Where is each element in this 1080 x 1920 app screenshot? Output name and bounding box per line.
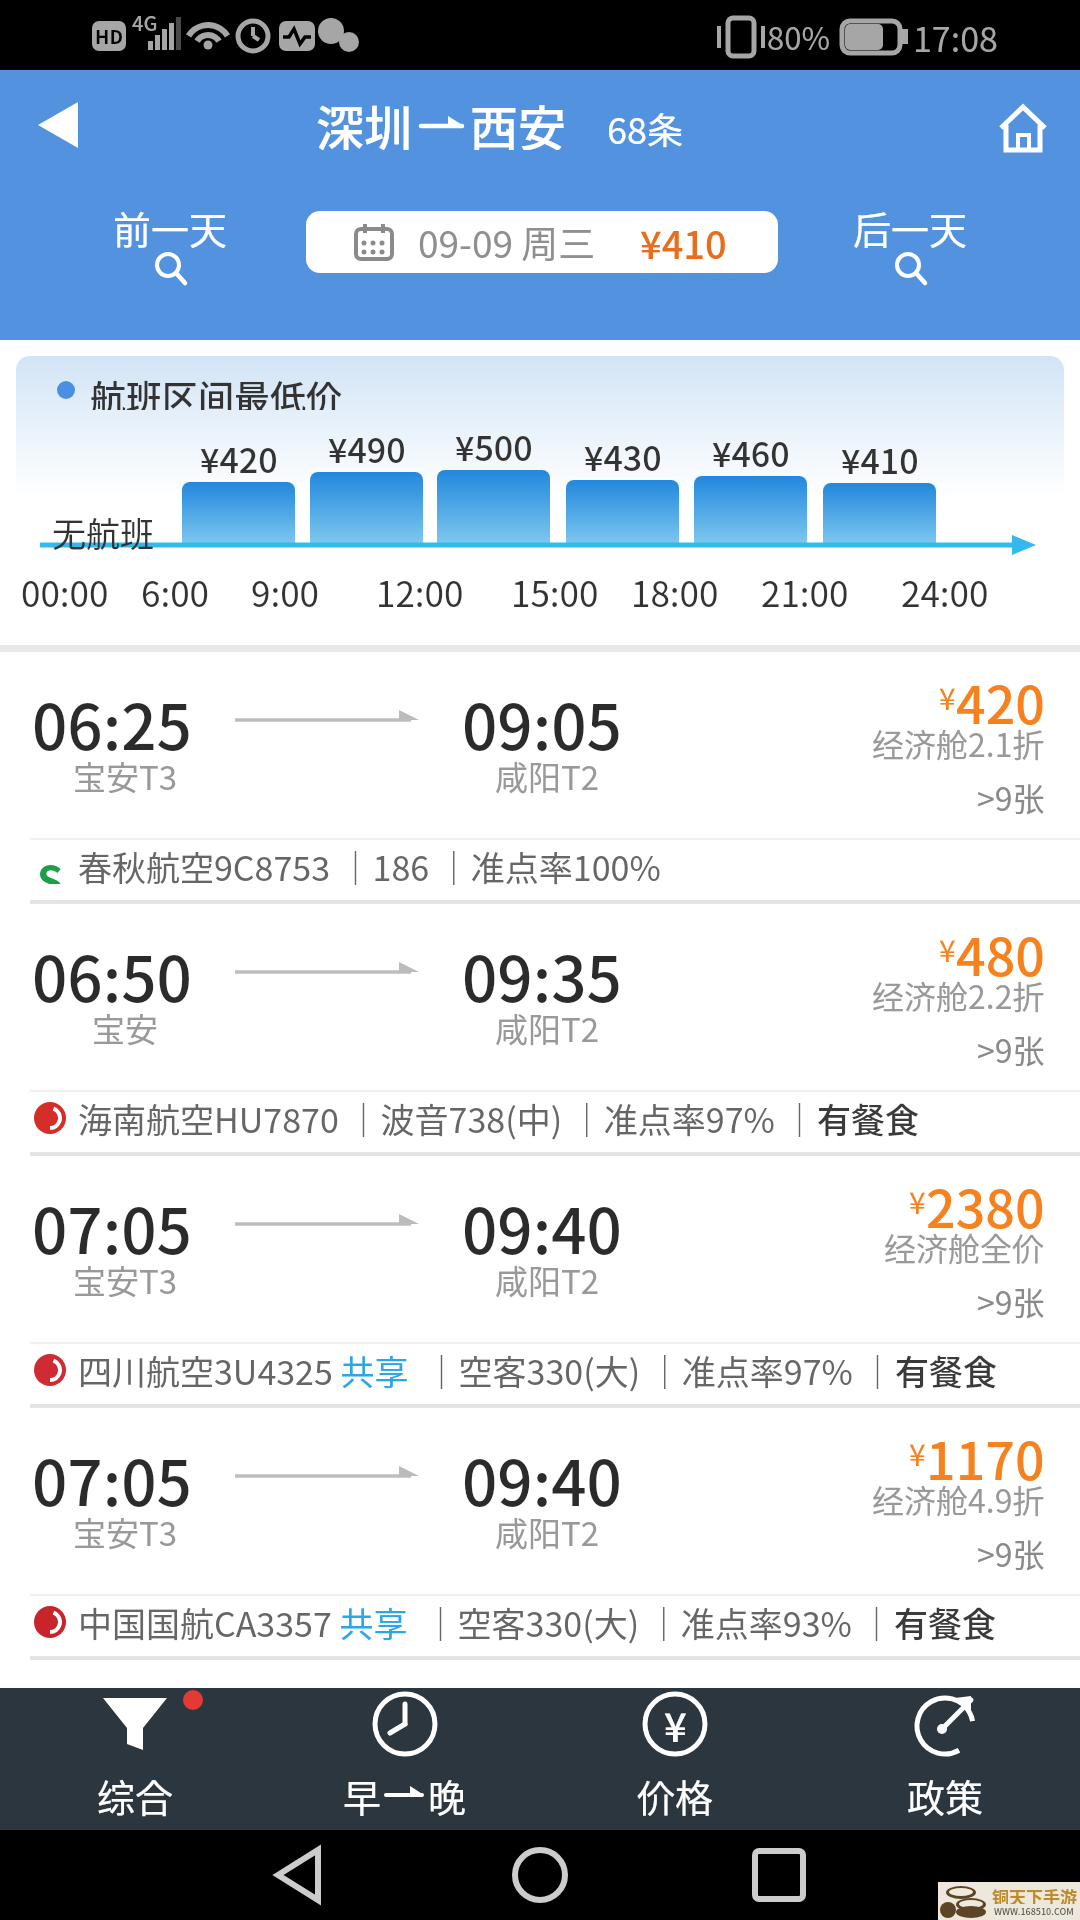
staticText: ¥ bbox=[909, 1179, 926, 1222]
staticText: 晚 bbox=[428, 1768, 467, 1818]
button[interactable]: 06:25 bbox=[0, 652, 1080, 904]
staticText: 有餐食 bbox=[895, 1346, 997, 1395]
staticText: 西安 bbox=[470, 90, 567, 150]
button[interactable]: 07:05 bbox=[0, 1408, 1080, 1660]
staticText: ｜空客330(大) ｜准点率93% ｜ bbox=[416, 1598, 894, 1647]
staticText: 中国国航CA3357 bbox=[78, 1598, 332, 1647]
staticText: 06:25 bbox=[32, 678, 192, 762]
staticText: >9张 bbox=[977, 1530, 1045, 1572]
staticText: 咸阳T2 bbox=[495, 1256, 600, 1300]
staticText: ¥ bbox=[664, 1696, 687, 1754]
staticText: 四川航空3U4325 bbox=[78, 1346, 333, 1395]
staticText: ¥460 bbox=[712, 428, 790, 470]
button[interactable]: 综合 bbox=[35, 1688, 235, 1830]
staticText: 咸阳T2 bbox=[495, 1508, 600, 1552]
staticText: 经济舱全价 bbox=[884, 1224, 1045, 1266]
staticText: ¥ bbox=[909, 1431, 926, 1474]
staticText: ¥410 bbox=[841, 435, 919, 477]
button[interactable]: 政策 bbox=[845, 1688, 1045, 1830]
staticText: 价格 bbox=[637, 1768, 714, 1818]
staticText: 宝安 bbox=[92, 1004, 158, 1048]
staticText: 07:05 bbox=[32, 1182, 192, 1266]
button[interactable]: 06:50 bbox=[0, 904, 1080, 1156]
staticText: >9张 bbox=[977, 774, 1045, 816]
staticText: 420 bbox=[956, 664, 1045, 728]
staticText: S bbox=[37, 848, 64, 884]
staticText: 宝安T3 bbox=[73, 1256, 178, 1300]
staticText: ｜波音738(中) ｜准点率97% ｜ bbox=[339, 1094, 817, 1143]
staticText: 有餐食 bbox=[894, 1598, 996, 1647]
staticText: 12:00 bbox=[376, 566, 464, 610]
staticText: ¥ bbox=[939, 675, 956, 718]
staticText: 春秋航空9C8753 bbox=[78, 842, 331, 891]
button[interactable]: ¥ bbox=[575, 1688, 775, 1830]
staticText: 480 bbox=[956, 916, 1045, 980]
staticText: 00:00 bbox=[21, 566, 109, 610]
staticText: HD bbox=[95, 22, 123, 50]
staticText: 09-09 周三 bbox=[418, 215, 596, 269]
staticText: 09:05 bbox=[462, 678, 622, 762]
staticText: ¥420 bbox=[200, 434, 278, 476]
button[interactable]: 前一天 bbox=[80, 190, 260, 320]
staticText: 06:50 bbox=[32, 930, 192, 1014]
button[interactable] bbox=[985, 95, 1065, 165]
staticText: 经济舱2.2折 bbox=[872, 972, 1045, 1014]
staticText: 1170 bbox=[926, 1420, 1045, 1484]
staticText: 经济舱4.9折 bbox=[872, 1476, 1045, 1518]
staticText: 9:00 bbox=[251, 566, 320, 610]
staticText: 09:40 bbox=[462, 1182, 622, 1266]
staticText: >9张 bbox=[977, 1026, 1045, 1068]
staticText: ｜空客330(大) ｜准点率97% ｜ bbox=[417, 1346, 895, 1395]
staticText: 共享 bbox=[333, 1346, 417, 1395]
staticText: ¥490 bbox=[328, 424, 406, 466]
staticText: 21:00 bbox=[761, 566, 849, 610]
button[interactable]: 07:05 bbox=[0, 1156, 1080, 1408]
staticText: 17:08 bbox=[913, 13, 998, 59]
staticText: ¥500 bbox=[455, 422, 533, 464]
button[interactable]: 早 bbox=[305, 1688, 505, 1830]
staticText: 共享 bbox=[332, 1598, 416, 1647]
staticText: ¥410 bbox=[640, 215, 727, 270]
staticText: 09:40 bbox=[462, 1434, 622, 1518]
staticText: 有餐食 bbox=[817, 1094, 919, 1143]
staticText: 咸阳T2 bbox=[495, 752, 600, 796]
staticText: 宝安T3 bbox=[73, 1508, 178, 1552]
staticText: 4G bbox=[132, 8, 158, 34]
staticText: 经济舱2.1折 bbox=[872, 720, 1045, 762]
staticText: 2380 bbox=[926, 1168, 1045, 1232]
staticText: 68条 bbox=[607, 102, 683, 154]
staticText: 09:35 bbox=[462, 930, 622, 1014]
staticText: 铜天下手游 bbox=[992, 1884, 1077, 1904]
staticText: 18:00 bbox=[631, 566, 719, 610]
staticText: 前一天 bbox=[113, 200, 228, 250]
staticText: 咸阳T2 bbox=[495, 1004, 600, 1048]
staticText: 无航班 bbox=[52, 508, 154, 552]
staticText: 综合 bbox=[97, 1768, 174, 1818]
staticText: 07:05 bbox=[32, 1434, 192, 1518]
staticText: 航班区间最低价 bbox=[90, 370, 343, 410]
staticText: 后一天 bbox=[853, 200, 968, 250]
staticText: 80% bbox=[767, 14, 830, 58]
staticText: 宝安T3 bbox=[73, 752, 178, 796]
staticText: 24:00 bbox=[901, 566, 989, 610]
button[interactable] bbox=[20, 80, 120, 180]
staticText: 早 bbox=[343, 1768, 382, 1818]
staticText: 6:00 bbox=[141, 566, 210, 610]
staticText: ¥430 bbox=[584, 432, 662, 474]
button[interactable]: 09-09 周三 bbox=[306, 211, 778, 273]
staticText: ｜186 ｜准点率100% bbox=[331, 842, 661, 891]
staticText: 海南航空HU7870 bbox=[78, 1094, 339, 1143]
staticText: ¥ bbox=[939, 927, 956, 970]
staticText: 政策 bbox=[907, 1768, 984, 1818]
staticText: 深圳 bbox=[316, 90, 413, 150]
staticText: 15:00 bbox=[511, 566, 599, 610]
staticText: WWW.168510.COM bbox=[994, 1905, 1074, 1918]
staticText: >9张 bbox=[977, 1278, 1045, 1320]
button[interactable]: 后一天 bbox=[820, 190, 1000, 320]
